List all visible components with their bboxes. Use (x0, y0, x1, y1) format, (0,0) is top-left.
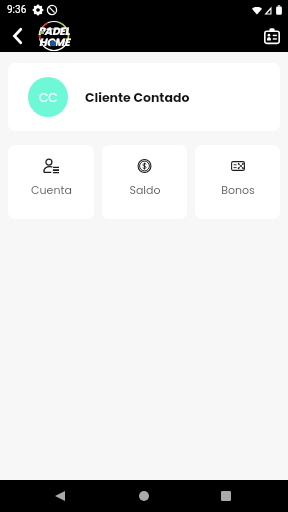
button[interactable]: Bonos (195, 145, 280, 219)
staticText: HOME (39, 35, 70, 50)
button[interactable]: Saldo (102, 145, 187, 219)
staticText: PADEL (38, 24, 70, 39)
button[interactable]: CC (8, 63, 280, 131)
staticText: 9:36 (7, 4, 27, 16)
button[interactable]: Inicio (130, 482, 158, 510)
button[interactable]: Atrás (3, 22, 31, 50)
button[interactable]: Carnet (259, 23, 285, 49)
staticText: Bonos (221, 182, 255, 197)
staticText: Cuenta (31, 182, 72, 197)
button[interactable]: Cuenta (8, 145, 94, 219)
staticText: Saldo (129, 182, 161, 197)
staticText: Cliente Contado (85, 89, 190, 106)
staticText: PADEL CLUB (44, 27, 65, 31)
staticText: CC (39, 89, 58, 106)
button[interactable]: Atrás (46, 482, 74, 510)
button[interactable]: Recientes (212, 482, 240, 510)
